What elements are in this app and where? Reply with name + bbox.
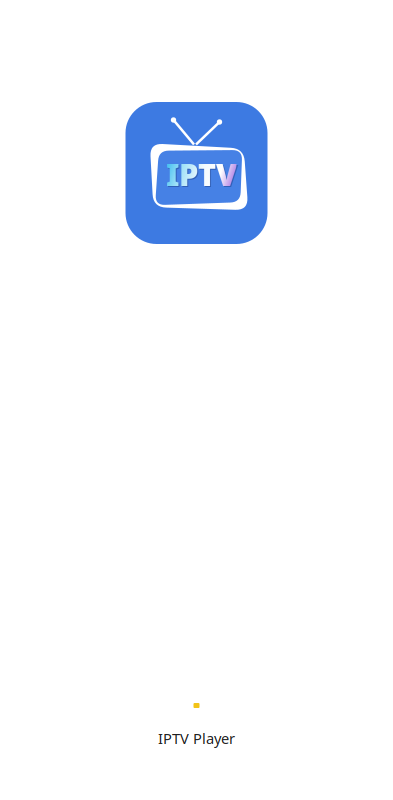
staticText: IPTV Player: [158, 728, 235, 748]
staticText: IPTV: [167, 155, 238, 195]
